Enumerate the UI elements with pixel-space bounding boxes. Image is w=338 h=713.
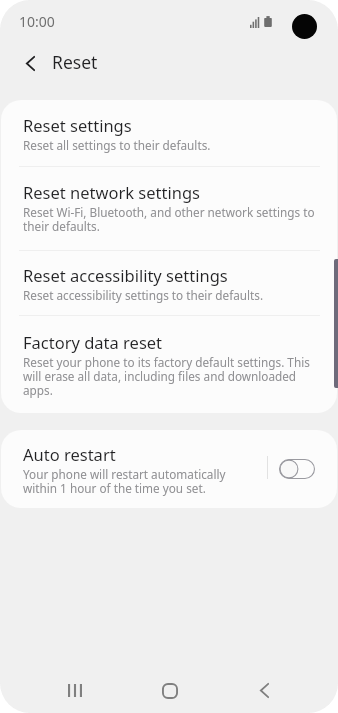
- staticText: Factory data reset: [23, 331, 163, 353]
- button[interactable]: Reset accessibility settings: [1, 251, 337, 315]
- other: Mobile signal: [250, 17, 260, 28]
- button[interactable]: Back: [240, 666, 288, 713]
- staticText: Reset settings: [23, 114, 132, 136]
- other: Battery: [264, 16, 272, 27]
- staticText: Your phone will restart automatically wi…: [23, 466, 251, 496]
- staticText: Reset your phone to its factory default …: [23, 354, 321, 398]
- staticText: Reset Wi-Fi, Bluetooth, and other networ…: [23, 204, 321, 234]
- button[interactable]: Recent apps: [51, 666, 99, 713]
- button[interactable]: Reset settings: [1, 100, 337, 166]
- staticText: Reset accessibility settings to their de…: [23, 287, 264, 303]
- button[interactable]: Auto restart: [1, 430, 259, 508]
- staticText: Reset: [52, 50, 98, 74]
- staticText: Reset accessibility settings: [23, 264, 228, 286]
- button[interactable]: Home: [146, 667, 194, 713]
- button[interactable]: Auto restart, off: [269, 430, 325, 508]
- button[interactable]: Navigate up: [10, 43, 50, 83]
- staticText: Auto restart: [23, 443, 116, 465]
- button[interactable]: Factory data reset: [1, 316, 337, 413]
- staticText: Reset all settings to their defaults.: [23, 137, 211, 153]
- staticText: 10:00: [19, 12, 55, 31]
- button[interactable]: Reset network settings: [1, 167, 337, 250]
- staticText: Reset network settings: [23, 181, 200, 203]
